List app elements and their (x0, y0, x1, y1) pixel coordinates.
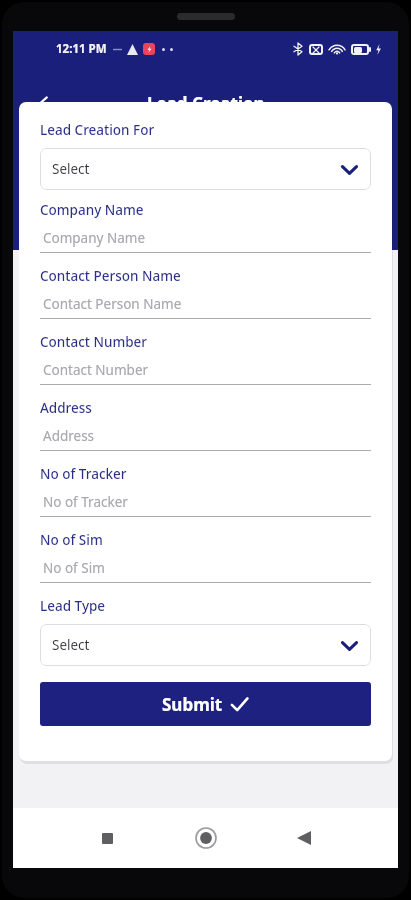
button[interactable]: Contact Person Name (40, 295, 371, 319)
staticText: Select (52, 636, 90, 654)
staticText: Lead Type (40, 597, 106, 615)
button[interactable]: Home (183, 815, 229, 861)
button[interactable]: Submit (40, 682, 371, 726)
staticText: No of Sim (43, 559, 105, 577)
staticText: Contact Number (43, 361, 149, 379)
button[interactable]: No of Sim (40, 559, 371, 583)
staticText: No of Tracker (43, 493, 128, 511)
staticText: 12:11 PM (56, 41, 107, 57)
button[interactable]: Contact Number (40, 361, 371, 385)
staticText: Lead Creation (147, 92, 265, 115)
button[interactable]: Back (27, 82, 71, 126)
button[interactable]: Select (40, 148, 371, 190)
staticText: Contact Number (40, 333, 148, 351)
staticText: Company Name (43, 229, 146, 247)
button[interactable]: Select (40, 624, 371, 666)
staticText: Address (40, 399, 92, 417)
button[interactable]: Back (281, 815, 327, 861)
staticText: Lead Creation For (40, 121, 155, 139)
button[interactable]: Recent apps (84, 815, 130, 861)
staticText: Company Name (40, 201, 144, 219)
staticText: Address (43, 427, 95, 445)
staticText: Contact Person Name (40, 267, 181, 285)
staticText: Select (52, 160, 90, 178)
button[interactable]: Address (40, 427, 371, 451)
staticText: No of Tracker (40, 465, 127, 483)
button[interactable]: Company Name (40, 229, 371, 253)
staticText: Contact Person Name (43, 295, 182, 313)
button[interactable]: No of Tracker (40, 493, 371, 517)
staticText: No of Sim (40, 531, 103, 549)
staticText: Submit (162, 693, 223, 716)
